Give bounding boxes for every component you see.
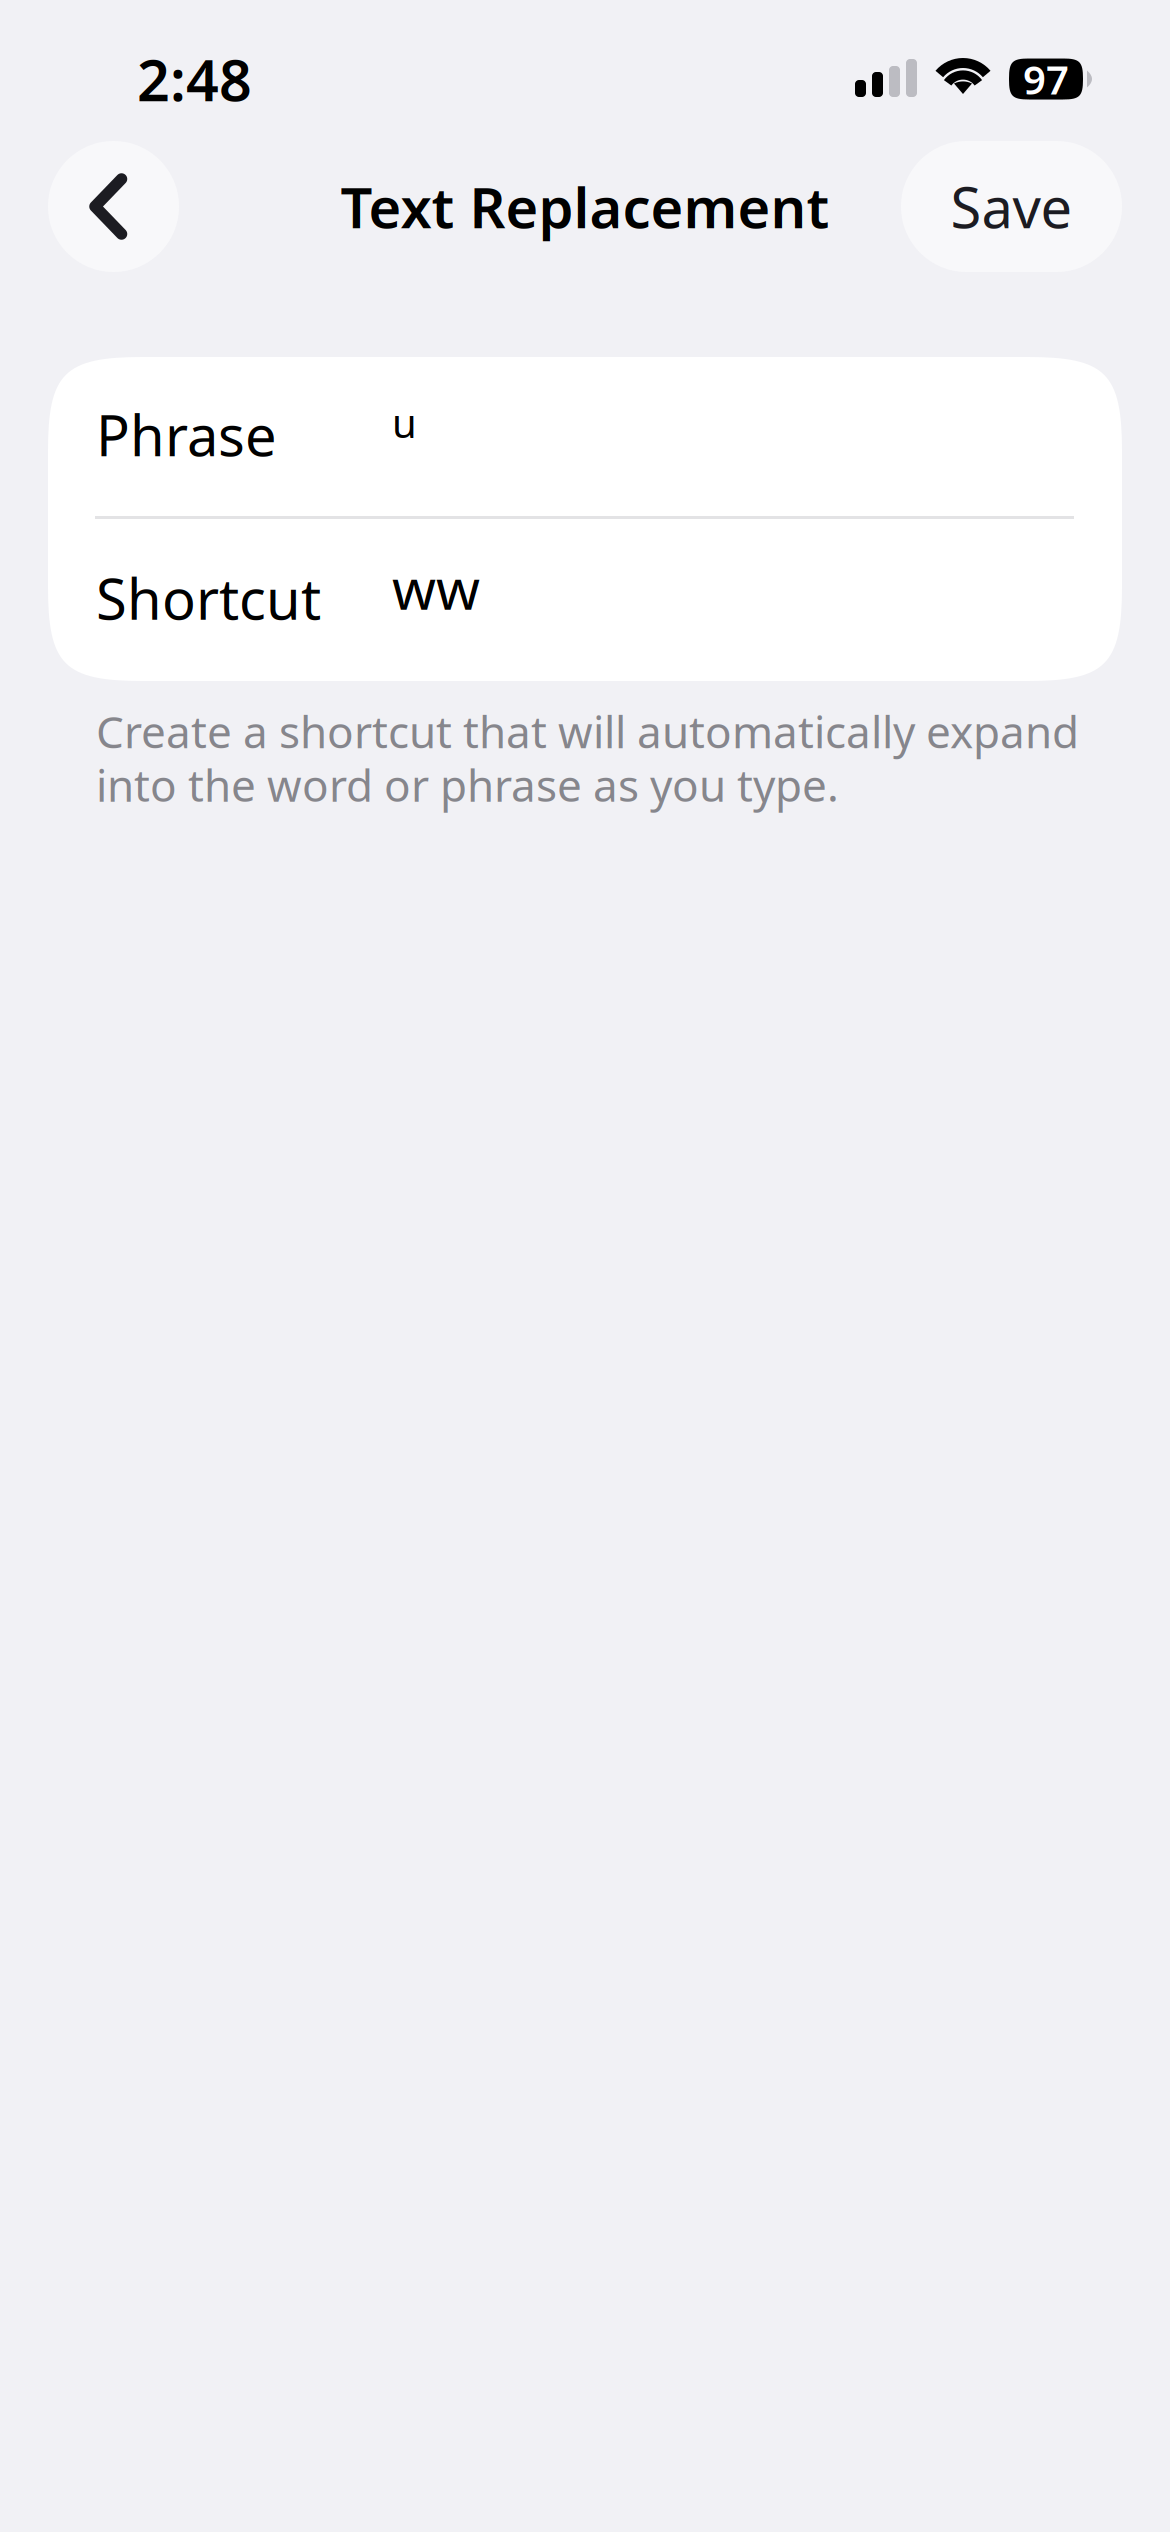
button[interactable]: Back (48, 141, 179, 272)
button[interactable]: Shortcut (48, 519, 1122, 681)
staticText: Shortcut (96, 561, 321, 635)
button[interactable]: Save (901, 141, 1122, 272)
staticText: Phrase (96, 397, 277, 472)
staticText: 97 (1023, 52, 1069, 105)
button[interactable]: Phrase (48, 357, 1122, 516)
staticText: u (392, 396, 417, 449)
staticText: Save (950, 169, 1072, 244)
staticText: 2:48 (137, 41, 252, 117)
staticText: into the word or phrase as you type. (96, 755, 839, 814)
staticText: ww (392, 551, 480, 625)
staticText: Text Replacement (340, 169, 829, 244)
staticText: Create a shortcut that will automaticall… (96, 702, 1079, 760)
